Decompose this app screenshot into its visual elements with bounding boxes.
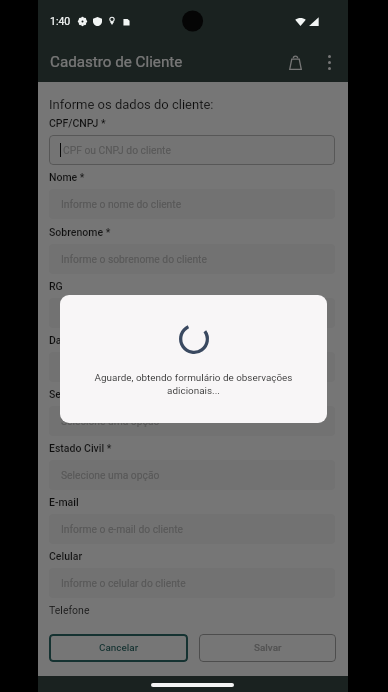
button[interactable]: Selecione uma opção (49, 406, 335, 436)
staticText: 1:40 (50, 15, 71, 27)
staticText: Selecione uma opção (61, 415, 160, 427)
button[interactable]: Shopping bag (278, 45, 312, 79)
staticText: Aguarde, obtendo formulário de observaçõ… (85, 372, 302, 396)
staticText: Estado Civil * (49, 442, 112, 454)
button[interactable]: RG do cliente (49, 298, 335, 328)
button[interactable]: More options (312, 45, 346, 79)
button[interactable]: dd/mm/aaaa (49, 352, 335, 382)
staticText: Selecione uma opção (61, 469, 160, 481)
staticText: Nome * (49, 171, 85, 183)
staticText: Data de Nascimento (49, 334, 145, 346)
staticText: RG (49, 280, 63, 292)
staticText: Sobrenome * (49, 226, 111, 238)
button[interactable]: Informe o sobrenome do cliente (49, 244, 335, 274)
staticText: Informe o sobrenome do cliente (61, 253, 207, 265)
button[interactable]: CPF ou CNPJ do cliente (49, 135, 335, 165)
button[interactable]: Informe o nome do cliente (49, 189, 335, 219)
staticText: Informe o e-mail do cliente (61, 523, 184, 535)
button[interactable]: Selecione uma opção (49, 460, 335, 490)
button[interactable]: Cancelar (49, 634, 188, 662)
staticText: Cadastro de Cliente (50, 53, 183, 71)
staticText: Salvar (254, 642, 282, 654)
staticText: CPF ou CNPJ do cliente (63, 144, 171, 156)
button[interactable]: Informe o celular do cliente (49, 568, 335, 598)
staticText: CPF/CNPJ * (49, 117, 106, 129)
staticText: Informe o nome do cliente (61, 198, 182, 210)
staticText: Informe o celular do cliente (61, 577, 186, 589)
button[interactable]: Informe o e-mail do cliente (49, 514, 335, 544)
staticText: Cancelar (99, 642, 139, 654)
staticText: Celular (49, 550, 83, 562)
button[interactable]: Salvar (199, 634, 336, 662)
staticText: Informe os dados do cliente: (49, 97, 214, 112)
staticText: E-mail (49, 496, 79, 508)
staticText: Sexo (49, 388, 73, 400)
staticText: Telefone (49, 604, 90, 616)
